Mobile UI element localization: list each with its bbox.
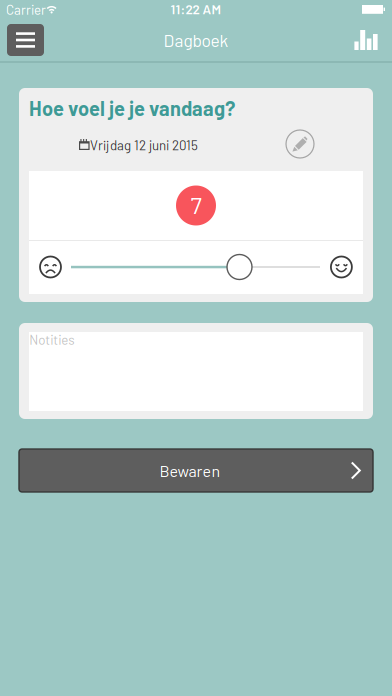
button[interactable]: Menu xyxy=(7,24,44,56)
staticText: Bewaren xyxy=(159,461,220,480)
button[interactable]: Statistics xyxy=(349,24,383,56)
staticText: Hoe voel je je vandaag? xyxy=(29,96,235,120)
staticText: 7 xyxy=(190,190,201,219)
staticText: Vrijdag 12 juni 2015 xyxy=(90,137,198,153)
staticText: 11:22 AM xyxy=(170,1,221,17)
button[interactable]: Edit xyxy=(285,129,315,159)
button[interactable]: Bewaren xyxy=(19,449,373,492)
staticText: Notities xyxy=(29,331,74,347)
staticText: Dagboek xyxy=(163,30,228,50)
staticText: Carrier xyxy=(6,1,46,17)
